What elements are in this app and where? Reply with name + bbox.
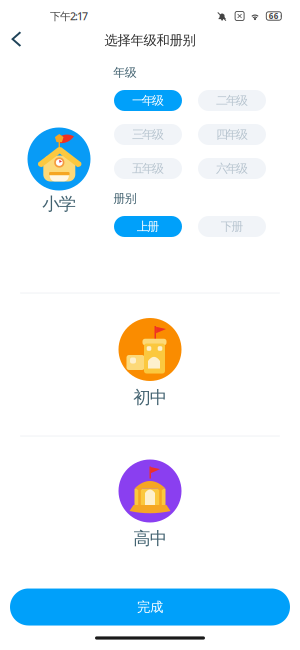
staticText: 六年级 <box>216 161 248 176</box>
button[interactable]: 小学 <box>12 118 106 218</box>
button[interactable]: Back <box>1 24 31 54</box>
staticText: 册别 <box>113 191 137 206</box>
button[interactable]: 下册 <box>198 216 266 237</box>
staticText: 下午2:17 <box>50 9 88 23</box>
button[interactable]: 上册 <box>114 216 182 237</box>
button[interactable]: 二年级 <box>198 90 266 111</box>
staticText: 下册 <box>221 219 243 234</box>
button[interactable]: 初中 <box>103 308 197 408</box>
button[interactable]: 三年级 <box>114 124 182 145</box>
button[interactable]: 完成 <box>10 588 290 625</box>
staticText: 年级 <box>113 65 137 80</box>
staticText: 三年级 <box>132 127 164 142</box>
staticText: 完成 <box>137 599 163 615</box>
staticText: 五年级 <box>132 161 164 176</box>
staticText: 小学 <box>42 193 76 215</box>
button[interactable]: 五年级 <box>114 158 182 179</box>
button[interactable]: 一年级 <box>114 90 182 111</box>
button[interactable]: 四年级 <box>198 124 266 145</box>
staticText: 选择年级和册别 <box>104 32 195 49</box>
staticText: 66 <box>269 11 279 21</box>
staticText: 一年级 <box>132 93 164 108</box>
staticText: 高中 <box>133 528 167 549</box>
button[interactable]: 六年级 <box>198 158 266 179</box>
staticText: 四年级 <box>216 127 248 142</box>
staticText: 二年级 <box>216 93 248 108</box>
staticText: 上册 <box>137 219 159 234</box>
button[interactable]: 高中 <box>103 450 197 550</box>
staticText: 初中 <box>133 387 167 408</box>
